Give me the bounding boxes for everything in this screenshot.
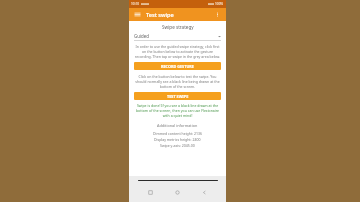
staticText: Test swipe [146, 11, 174, 19]
staticText: RECORD GESTURE [161, 64, 194, 69]
staticText: Click on the button below to test the sw… [134, 74, 221, 89]
button[interactable]: Recents [145, 187, 156, 198]
staticText: Guided [134, 33, 149, 39]
button[interactable]: Open navigation menu [133, 10, 142, 19]
button[interactable]: TEST SWIPE [134, 92, 221, 100]
button[interactable]: Guided [134, 32, 221, 40]
button[interactable]: Back [199, 187, 210, 198]
staticText: 100% [215, 2, 224, 6]
button[interactable]: Home [172, 187, 183, 198]
staticText: Dimmed content height: 2136 [153, 131, 203, 136]
staticText: Swipe strategy [162, 24, 194, 30]
staticText: Swipe y-axis: 2045.00 [160, 143, 195, 148]
staticText: In order to use the guided swipe strateg… [134, 44, 221, 59]
button[interactable]: RECORD GESTURE [134, 62, 221, 70]
staticText: Swipe is done! If you see a black line d… [134, 103, 221, 118]
staticText: TEST SWIPE [167, 94, 189, 99]
staticText: Additional information [157, 123, 198, 128]
staticText: 10:10 [131, 2, 140, 6]
staticText: Display metrics height: 2400 [154, 137, 201, 142]
button[interactable]: More options [213, 10, 222, 19]
